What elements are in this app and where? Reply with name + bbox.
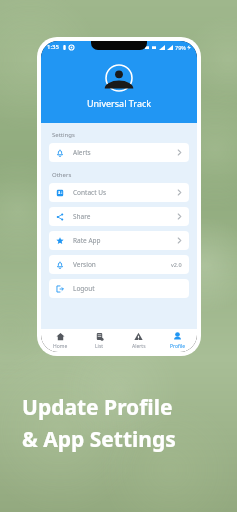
staticText: Settings [52, 131, 75, 139]
staticText: Alerts [73, 148, 91, 157]
button[interactable]: Contact Us [49, 183, 189, 202]
button[interactable]: Logout [49, 279, 189, 298]
button[interactable]: List [80, 329, 119, 352]
staticText: Others [52, 171, 72, 179]
staticText: 1:35 [47, 43, 59, 51]
staticText: Alerts [132, 343, 146, 350]
staticText: Contact Us [73, 188, 107, 197]
staticText: Home [53, 343, 68, 350]
staticText: Logout [73, 284, 95, 293]
staticText: Version [73, 260, 96, 269]
staticText: Profile [170, 343, 186, 350]
staticText: v2.0 [171, 261, 182, 268]
button[interactable]: Alerts [119, 329, 158, 352]
button[interactable]: Alerts [49, 143, 189, 162]
staticText: 79% [175, 44, 186, 51]
button[interactable]: Version [49, 255, 189, 274]
button[interactable]: Profile [158, 329, 197, 352]
button[interactable]: Home [41, 329, 80, 352]
staticText: List [95, 343, 104, 350]
staticText: Share [73, 212, 91, 221]
button[interactable]: Share [49, 207, 189, 226]
staticText: Rate App [73, 236, 101, 245]
staticText: Update Profile [22, 393, 173, 422]
staticText: Universal Track [41, 97, 197, 109]
button[interactable]: Rate App [49, 231, 189, 250]
staticText: & App Settings [22, 425, 176, 454]
